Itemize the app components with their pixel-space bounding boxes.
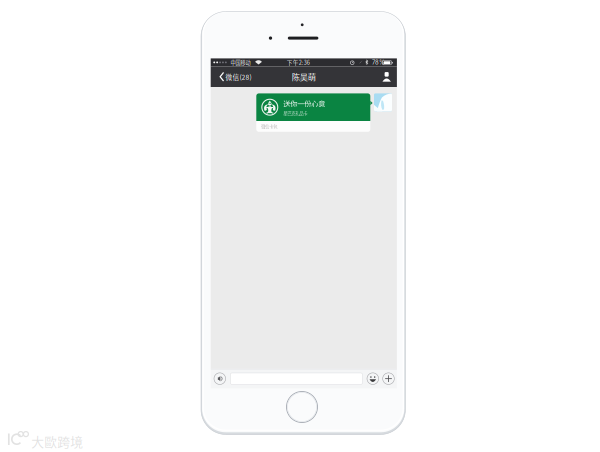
staticText: 78% [372,59,385,66]
staticText: 中国移动 [230,59,250,66]
staticText: 星巴克礼品卡 [283,110,307,116]
staticText: 微信(28) [225,72,251,82]
button[interactable]: Emoji [367,369,379,388]
staticText: 下午2:36 [287,58,310,66]
staticText: 微信卡包 [261,123,277,129]
staticText: 大歐跨境 [31,432,83,450]
button[interactable]: More options [383,369,394,388]
staticText: 送你一份心意 [283,98,325,108]
button[interactable]: Voice message [213,369,227,388]
button[interactable]: 微信(28) [214,66,257,87]
button[interactable]: Contact profile [380,66,394,87]
staticText: 陈吴萌 [292,71,316,83]
